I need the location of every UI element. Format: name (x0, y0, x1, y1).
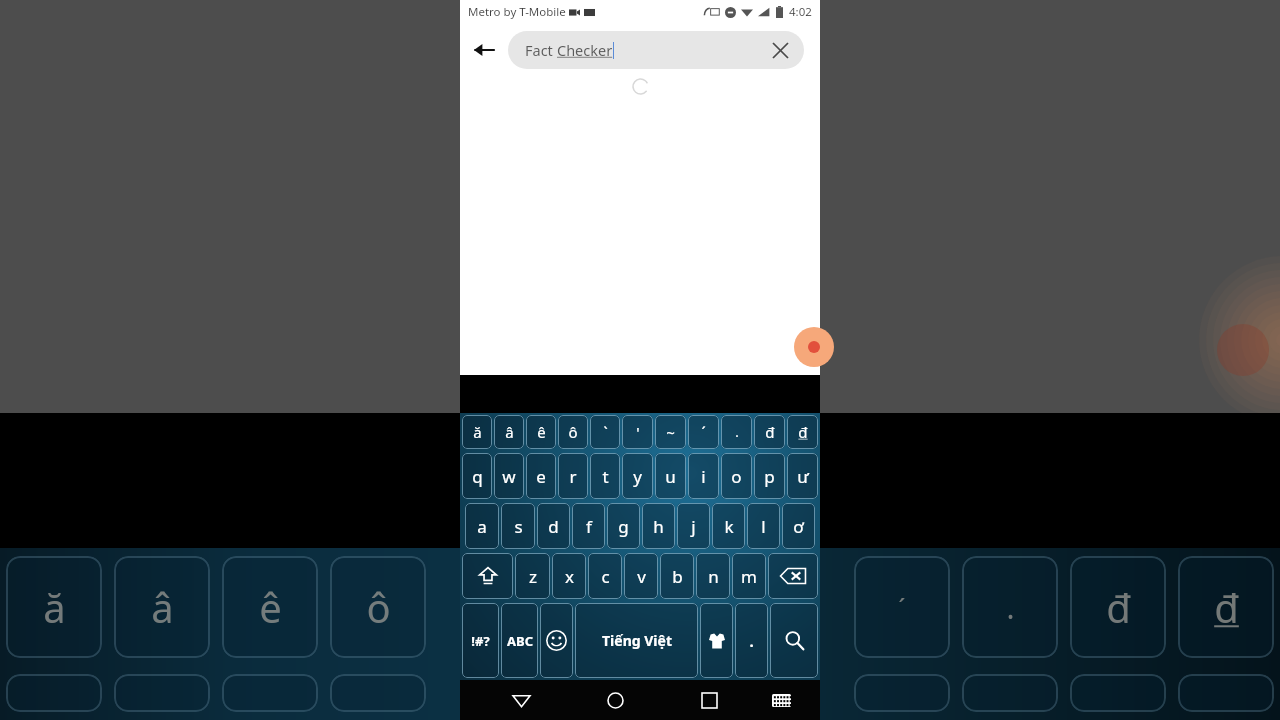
staticText: . (735, 423, 739, 441)
button[interactable]: Recents (685, 680, 733, 720)
button[interactable]: z (515, 553, 550, 599)
button[interactable]: ´ (688, 415, 719, 449)
staticText: ê (259, 580, 282, 634)
button[interactable]: ê (526, 415, 556, 449)
staticText: . (749, 631, 754, 651)
staticText: Fact (525, 40, 557, 60)
staticText: ´ (701, 422, 706, 442)
staticText: x (565, 565, 574, 588)
staticText: . (1006, 587, 1015, 628)
button[interactable]: ' (622, 415, 653, 449)
button[interactable]: i (688, 453, 719, 499)
button[interactable]: j (677, 503, 710, 549)
button[interactable]: Action (794, 327, 834, 367)
button[interactable]: Tiếng Việt (575, 603, 698, 678)
staticText: a (477, 515, 487, 538)
staticText: ư (797, 465, 809, 488)
button[interactable]: Backspace (768, 553, 818, 599)
staticText: y (633, 465, 642, 488)
staticText: s (514, 515, 523, 538)
button[interactable]: ư (787, 453, 818, 499)
button[interactable]: !#? (462, 603, 499, 678)
button[interactable]: n (696, 553, 730, 599)
button[interactable]: v (624, 553, 658, 599)
staticText: t (602, 465, 609, 488)
staticText: r (569, 465, 577, 488)
button[interactable]: Switch keyboard (761, 680, 801, 720)
button[interactable]: Back (497, 680, 545, 720)
staticText: z (529, 565, 537, 588)
button[interactable]: c (588, 553, 622, 599)
staticText: c (601, 565, 610, 588)
button[interactable]: f (572, 503, 605, 549)
button[interactable]: Clear search (764, 34, 796, 66)
button[interactable]: Shift (462, 553, 513, 599)
staticText: v (637, 565, 646, 588)
button[interactable]: â (494, 415, 524, 449)
button[interactable]: Home (591, 680, 639, 720)
button[interactable]: Emoji (540, 603, 573, 678)
button[interactable]: Theme (700, 603, 733, 678)
staticText: l (761, 515, 766, 538)
button[interactable]: ` (590, 415, 620, 449)
staticText: m (741, 565, 757, 588)
button[interactable]: Search (770, 603, 818, 678)
other: Shift (477, 565, 499, 587)
button[interactable]: s (501, 503, 535, 549)
other: Theme (707, 631, 727, 651)
button[interactable]: ABC (501, 603, 538, 678)
button[interactable]: x (552, 553, 586, 599)
button[interactable]: e (526, 453, 556, 499)
staticText: ' (636, 422, 640, 442)
staticText: ô (568, 422, 578, 442)
button[interactable]: p (754, 453, 785, 499)
staticText: e (536, 465, 546, 488)
button[interactable]: g (607, 503, 640, 549)
staticText: i (701, 465, 706, 488)
button[interactable]: Fact (508, 31, 804, 69)
button[interactable]: . (735, 603, 768, 678)
staticText: Checker (557, 40, 613, 60)
staticText: d (548, 515, 559, 538)
button[interactable]: u (655, 453, 686, 499)
staticText: h (653, 515, 664, 538)
button[interactable]: đ (754, 415, 785, 449)
button[interactable]: đ (787, 415, 818, 449)
button[interactable]: ă (462, 415, 492, 449)
staticText: â (151, 580, 174, 634)
staticText: â (505, 422, 514, 442)
button[interactable]: ~ (655, 415, 686, 449)
button[interactable]: y (622, 453, 653, 499)
staticText: u (665, 465, 676, 488)
staticText: đ (1106, 580, 1131, 634)
button[interactable]: ô (558, 415, 588, 449)
staticText: f (586, 515, 592, 538)
staticText: ă (43, 580, 66, 634)
button[interactable]: . (721, 415, 752, 449)
other: Search (784, 630, 805, 651)
staticText: ê (537, 422, 546, 442)
button[interactable]: r (558, 453, 588, 499)
staticText: b (672, 565, 683, 588)
staticText: j (691, 515, 696, 538)
button[interactable]: Back (460, 26, 508, 74)
button[interactable]: l (747, 503, 780, 549)
button[interactable]: o (721, 453, 752, 499)
other: Emoji (546, 630, 567, 651)
button[interactable]: d (537, 503, 570, 549)
button[interactable]: ơ (782, 503, 815, 549)
button[interactable]: q (462, 453, 492, 499)
button[interactable]: h (642, 503, 675, 549)
button[interactable]: m (732, 553, 766, 599)
staticText: ~ (666, 422, 675, 442)
button[interactable]: k (712, 503, 745, 549)
button[interactable]: w (494, 453, 524, 499)
staticText: Tiếng Việt (602, 631, 672, 650)
button[interactable]: b (660, 553, 694, 599)
button[interactable]: a (465, 503, 499, 549)
staticText: ´ (898, 590, 906, 625)
staticText: g (618, 515, 629, 538)
staticText: !#? (471, 632, 490, 650)
staticText: k (724, 515, 734, 538)
button[interactable]: t (590, 453, 620, 499)
